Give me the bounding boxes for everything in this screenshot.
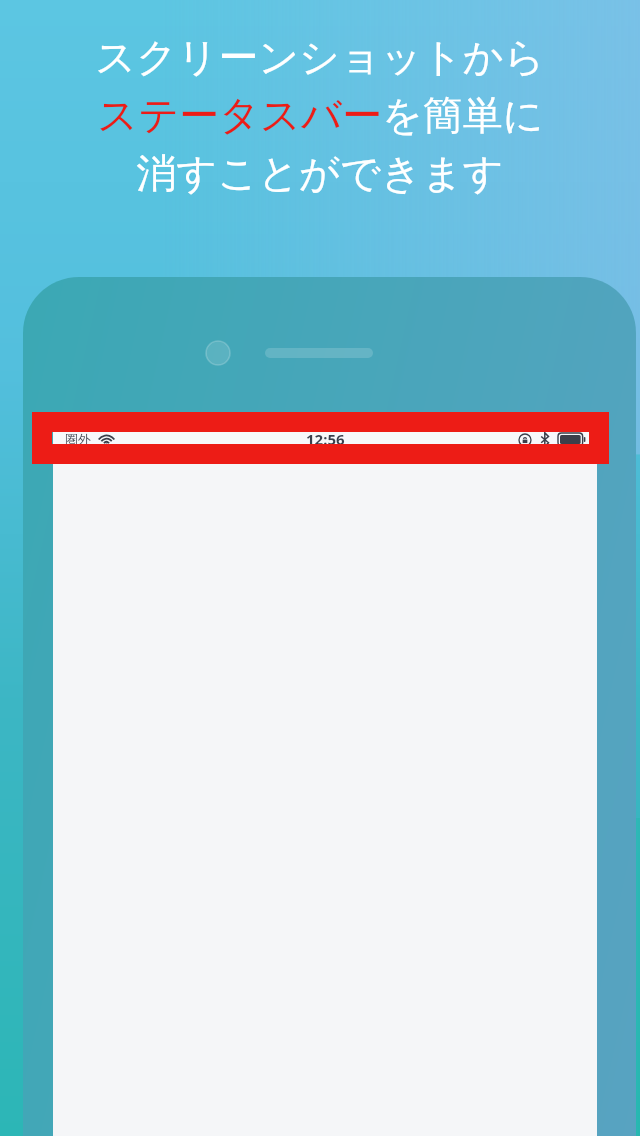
other: Wi-Fi <box>98 433 115 446</box>
staticText: 圏外 <box>65 431 91 447</box>
other: Battery full <box>558 433 586 446</box>
staticText: 消すことができます <box>136 148 504 198</box>
staticText: 12:56 <box>306 429 345 449</box>
other: Rotation lock <box>518 433 532 447</box>
staticText: スクリーンショットから <box>95 32 545 82</box>
staticText: ステータスバーを簡単に <box>97 90 544 140</box>
other: Bluetooth <box>540 432 550 447</box>
button[interactable]: 圏外 <box>53 423 597 455</box>
